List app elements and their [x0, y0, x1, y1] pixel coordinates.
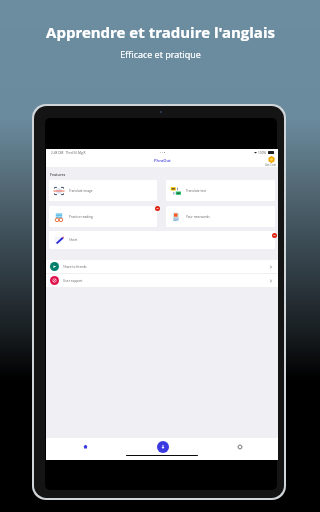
button[interactable]: Share to friends	[46, 260, 278, 273]
button[interactable]: Translate text	[166, 180, 275, 201]
staticText: Get Coin	[265, 163, 277, 167]
staticText: Short	[69, 238, 78, 242]
staticText: 100%	[258, 151, 267, 155]
staticText: PhraOut	[154, 158, 171, 163]
staticText: Features	[50, 172, 66, 177]
staticText: Share to friends	[63, 265, 87, 269]
staticText: Efficace et pratique	[120, 48, 201, 60]
button[interactable]: Your new words	[166, 206, 275, 227]
staticText: Translate image	[69, 189, 93, 193]
staticText: 2:48 DM Thrd 56 Mg R	[51, 151, 86, 155]
button[interactable]: Translate image	[49, 180, 157, 201]
staticText: User support	[63, 279, 83, 283]
staticText: Apprendre et traduire l'anglais	[46, 22, 275, 42]
staticText: Practice reading	[69, 215, 93, 219]
button[interactable]: Get Coin	[265, 156, 277, 167]
button[interactable]: Short	[49, 231, 275, 249]
button[interactable]: Home	[46, 438, 124, 457]
staticText: Your new words	[186, 215, 210, 219]
staticText: Translate text	[186, 189, 207, 193]
button[interactable]: Settings	[201, 438, 278, 457]
button[interactable]: Download	[124, 438, 201, 457]
button[interactable]: Practice reading	[49, 206, 157, 227]
button[interactable]: User support	[46, 274, 278, 287]
